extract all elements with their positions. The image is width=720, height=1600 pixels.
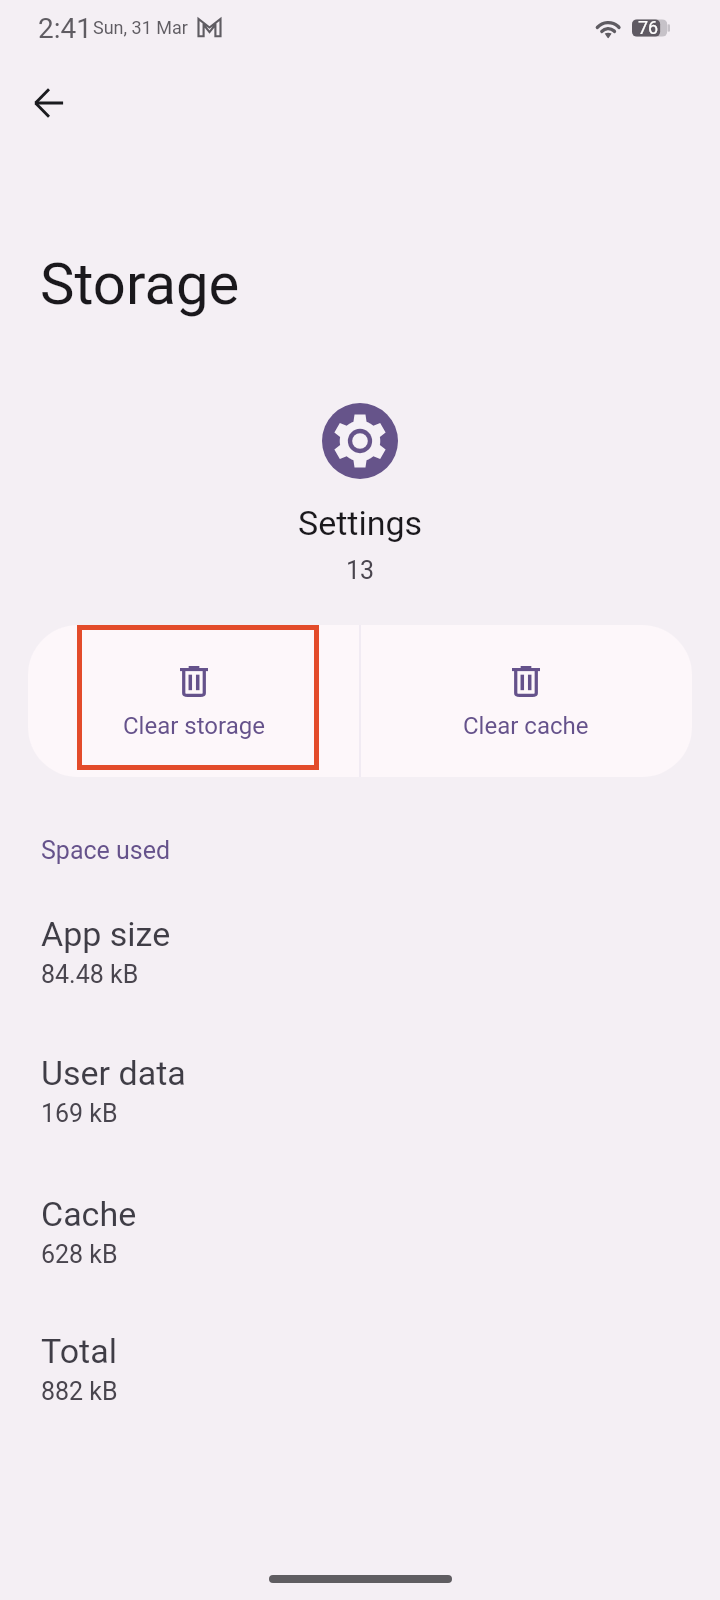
staticText: Settings xyxy=(298,503,423,543)
staticText: 84.48 kB xyxy=(41,960,139,989)
staticText: 2:41 xyxy=(38,12,92,45)
staticText: Clear storage xyxy=(123,712,265,740)
other: Wi-Fi xyxy=(595,16,623,38)
staticText: App size xyxy=(41,914,171,954)
staticText: Total xyxy=(41,1331,117,1371)
staticText: Sun, 31 Mar xyxy=(93,17,188,38)
staticText: Clear cache xyxy=(463,712,589,740)
button[interactable]: Clear cache xyxy=(360,625,692,777)
staticText: Storage xyxy=(40,250,240,318)
staticText: 882 kB xyxy=(41,1377,118,1406)
staticText: 169 kB xyxy=(41,1099,118,1128)
button[interactable]: Back xyxy=(16,70,82,136)
staticText: 76 xyxy=(638,17,659,38)
staticText: 628 kB xyxy=(41,1240,118,1269)
staticText: Cache xyxy=(41,1194,137,1234)
other: Gmail notification xyxy=(197,18,222,37)
staticText: 13 xyxy=(346,556,375,585)
staticText: User data xyxy=(41,1053,186,1093)
button[interactable]: Clear storage xyxy=(28,625,360,777)
staticText: Space used xyxy=(41,836,171,865)
